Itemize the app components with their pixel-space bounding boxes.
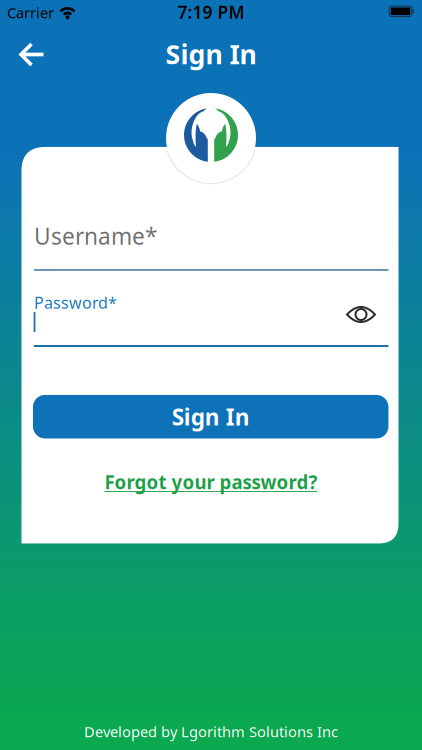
button[interactable] [34, 294, 388, 348]
button[interactable] [10, 32, 54, 76]
staticText: Forgot your password? [104, 470, 317, 494]
staticText: Carrier [7, 3, 54, 22]
staticText: Developed by Lgorithm Solutions Inc [84, 722, 338, 741]
staticText: Sign In [165, 36, 256, 72]
staticText: 7:19 PM [177, 0, 244, 23]
button[interactable] [344, 300, 378, 328]
staticText: Password* [34, 292, 117, 313]
staticText: Username* [34, 221, 157, 251]
staticText: Sign In [172, 402, 250, 432]
button[interactable]: Forgot your password? [104, 470, 317, 494]
button[interactable] [34, 222, 388, 272]
button[interactable]: Sign In [33, 395, 388, 438]
